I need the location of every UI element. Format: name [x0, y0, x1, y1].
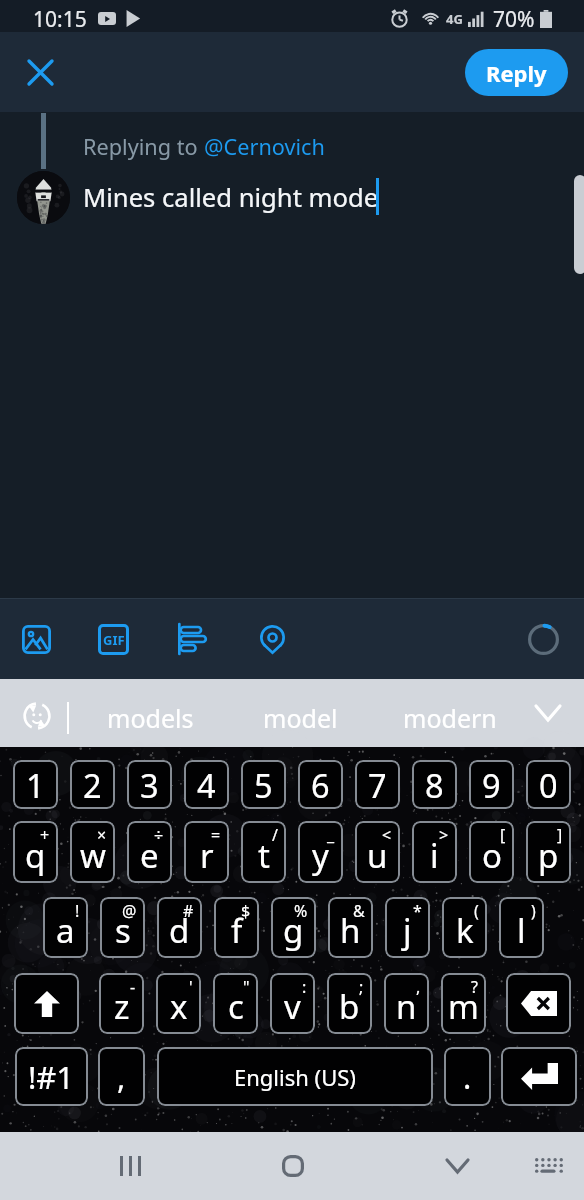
- staticText: o: [482, 833, 502, 878]
- button[interactable]: Change keyboard: [518, 1132, 578, 1200]
- staticText: modern: [403, 701, 497, 735]
- button[interactable]: Backspace: [506, 973, 571, 1034]
- staticText: q: [25, 833, 46, 878]
- button[interactable]: ×: [70, 821, 115, 883]
- button[interactable]: Poll: [164, 611, 220, 667]
- staticText: 2: [83, 763, 102, 807]
- staticText: %: [294, 900, 308, 922]
- staticText: n: [396, 984, 417, 1029]
- button[interactable]: ]: [526, 821, 571, 883]
- button[interactable]: Space: [157, 1047, 433, 1106]
- button[interactable]: ?: [441, 973, 486, 1034]
- staticText: a: [56, 908, 75, 953]
- button[interactable]: Hide keyboard: [427, 1132, 487, 1200]
- staticText: 4G: [446, 10, 463, 28]
- staticText: ': [189, 976, 193, 998]
- button[interactable]: .: [444, 1047, 491, 1106]
- staticText: =: [211, 824, 221, 846]
- button[interactable]: >: [412, 821, 457, 883]
- staticText: :: [302, 976, 307, 998]
- button[interactable]: Home: [263, 1132, 323, 1200]
- button[interactable]: ': [156, 973, 201, 1034]
- staticText: GIF: [103, 631, 125, 649]
- staticText: model: [263, 701, 338, 735]
- button[interactable]: 2: [70, 760, 115, 809]
- button[interactable]: /: [241, 821, 286, 883]
- button[interactable]: -: [99, 973, 144, 1034]
- staticText: .: [463, 1056, 472, 1098]
- staticText: t: [258, 833, 270, 878]
- button[interactable]: Reply: [465, 49, 568, 96]
- button[interactable]: 9: [469, 760, 514, 809]
- button[interactable]: Enter: [501, 1047, 577, 1106]
- button[interactable]: _: [298, 821, 343, 883]
- staticText: z: [114, 984, 130, 1029]
- button[interactable]: =: [184, 821, 229, 883]
- staticText: #: [183, 900, 194, 922]
- button[interactable]: Recents: [100, 1132, 160, 1200]
- button[interactable]: Tweet text field: [0, 112, 584, 598]
- button[interactable]: [: [469, 821, 514, 883]
- staticText: Reply: [486, 58, 547, 88]
- button[interactable]: ÷: [127, 821, 172, 883]
- staticText: &: [353, 900, 365, 922]
- button[interactable]: :: [270, 973, 315, 1034]
- button[interactable]: More suggestions: [526, 691, 570, 735]
- staticText: 0: [539, 763, 558, 807]
- staticText: c: [228, 984, 244, 1029]
- button[interactable]: &: [328, 897, 373, 958]
- staticText: /: [272, 824, 278, 846]
- staticText: ): [531, 900, 536, 922]
- button[interactable]: +: [13, 821, 58, 883]
- staticText: h: [340, 908, 361, 953]
- button[interactable]: Shift: [14, 973, 79, 1034]
- button[interactable]: ): [499, 897, 544, 958]
- staticText: 6: [311, 763, 330, 807]
- button[interactable]: @: [100, 897, 145, 958]
- button[interactable]: <: [355, 821, 400, 883]
- button[interactable]: ,: [384, 973, 429, 1034]
- staticText: !#1: [28, 1056, 75, 1098]
- button[interactable]: 0: [526, 760, 571, 809]
- staticText: Replying to: [83, 132, 204, 162]
- button[interactable]: 7: [355, 760, 400, 809]
- staticText: models: [107, 701, 194, 735]
- button[interactable]: Add photo: [8, 611, 64, 667]
- staticText: 3: [140, 763, 159, 807]
- staticText: 7: [368, 763, 387, 807]
- staticText: ,: [416, 976, 421, 998]
- button[interactable]: 8: [412, 760, 457, 809]
- button[interactable]: !: [43, 897, 88, 958]
- button[interactable]: 4: [184, 760, 229, 809]
- button[interactable]: model: [225, 689, 375, 747]
- button[interactable]: Add GIF: [85, 611, 141, 667]
- staticText: ,: [117, 1056, 126, 1098]
- staticText: ×: [97, 824, 107, 846]
- button[interactable]: Emoji: [14, 693, 60, 739]
- button[interactable]: ,: [98, 1047, 145, 1106]
- button[interactable]: modern: [375, 689, 525, 747]
- staticText: 8: [425, 763, 444, 807]
- button[interactable]: *: [385, 897, 430, 958]
- button[interactable]: Symbols: [15, 1047, 88, 1106]
- staticText: 1: [26, 763, 45, 807]
- button[interactable]: (: [442, 897, 487, 958]
- button[interactable]: 1: [13, 760, 58, 809]
- button[interactable]: 3: [127, 760, 172, 809]
- button[interactable]: ": [213, 973, 258, 1034]
- staticText: g: [283, 908, 304, 953]
- button[interactable]: Location: [244, 611, 300, 667]
- button[interactable]: Character count: [516, 612, 570, 666]
- button[interactable]: 6: [298, 760, 343, 809]
- staticText: -: [130, 976, 136, 998]
- button[interactable]: Close: [18, 50, 62, 94]
- staticText: (: [474, 900, 479, 922]
- button[interactable]: 5: [241, 760, 286, 809]
- staticText: 10:15: [33, 5, 87, 32]
- button[interactable]: $: [214, 897, 259, 958]
- button[interactable]: models: [75, 689, 225, 747]
- button[interactable]: ;: [327, 973, 372, 1034]
- button[interactable]: %: [271, 897, 316, 958]
- button[interactable]: #: [157, 897, 202, 958]
- staticText: <: [382, 824, 392, 846]
